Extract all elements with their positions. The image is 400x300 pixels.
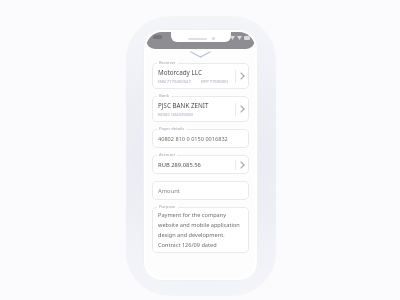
staticText: design and development. bbox=[158, 231, 225, 239]
button[interactable]: Amount bbox=[152, 181, 249, 200]
staticText: Contract 126/09 dated bbox=[158, 241, 217, 249]
button[interactable]: 40802 810 0 0150 0016832 bbox=[152, 129, 249, 148]
staticText: Purpose bbox=[159, 204, 176, 210]
staticText: Amount bbox=[158, 187, 180, 195]
staticText: Bank bbox=[159, 93, 169, 99]
staticText: 40802 810 0 0150 0016832 bbox=[158, 135, 228, 143]
staticText: BCBIC 044525000 bbox=[158, 112, 193, 118]
button[interactable]: Motorcady LLC bbox=[152, 63, 249, 89]
button[interactable]: RUB 289,085.56 bbox=[152, 155, 249, 174]
other: Open Bank bbox=[236, 96, 249, 122]
staticText: Payment for the company bbox=[158, 211, 227, 219]
button[interactable]: PJSC BANK ZENIT bbox=[152, 96, 249, 122]
staticText: Payer details bbox=[159, 126, 185, 132]
staticText: KPP 77590001 bbox=[201, 79, 229, 85]
staticText: website and mobile application bbox=[158, 221, 240, 229]
staticText: PJSC BANK ZENIT bbox=[158, 101, 209, 109]
staticText: INN 7779460047 bbox=[158, 79, 191, 85]
staticText: Motorcady LLC bbox=[158, 68, 202, 76]
other: Open Receiver bbox=[236, 63, 249, 89]
staticText: Receiver bbox=[159, 60, 176, 66]
staticText: Account bbox=[159, 152, 175, 158]
other: Open Account bbox=[236, 155, 249, 174]
staticText: RUB 289,085.56 bbox=[158, 161, 201, 169]
button[interactable]: Payment for the company bbox=[152, 207, 249, 253]
